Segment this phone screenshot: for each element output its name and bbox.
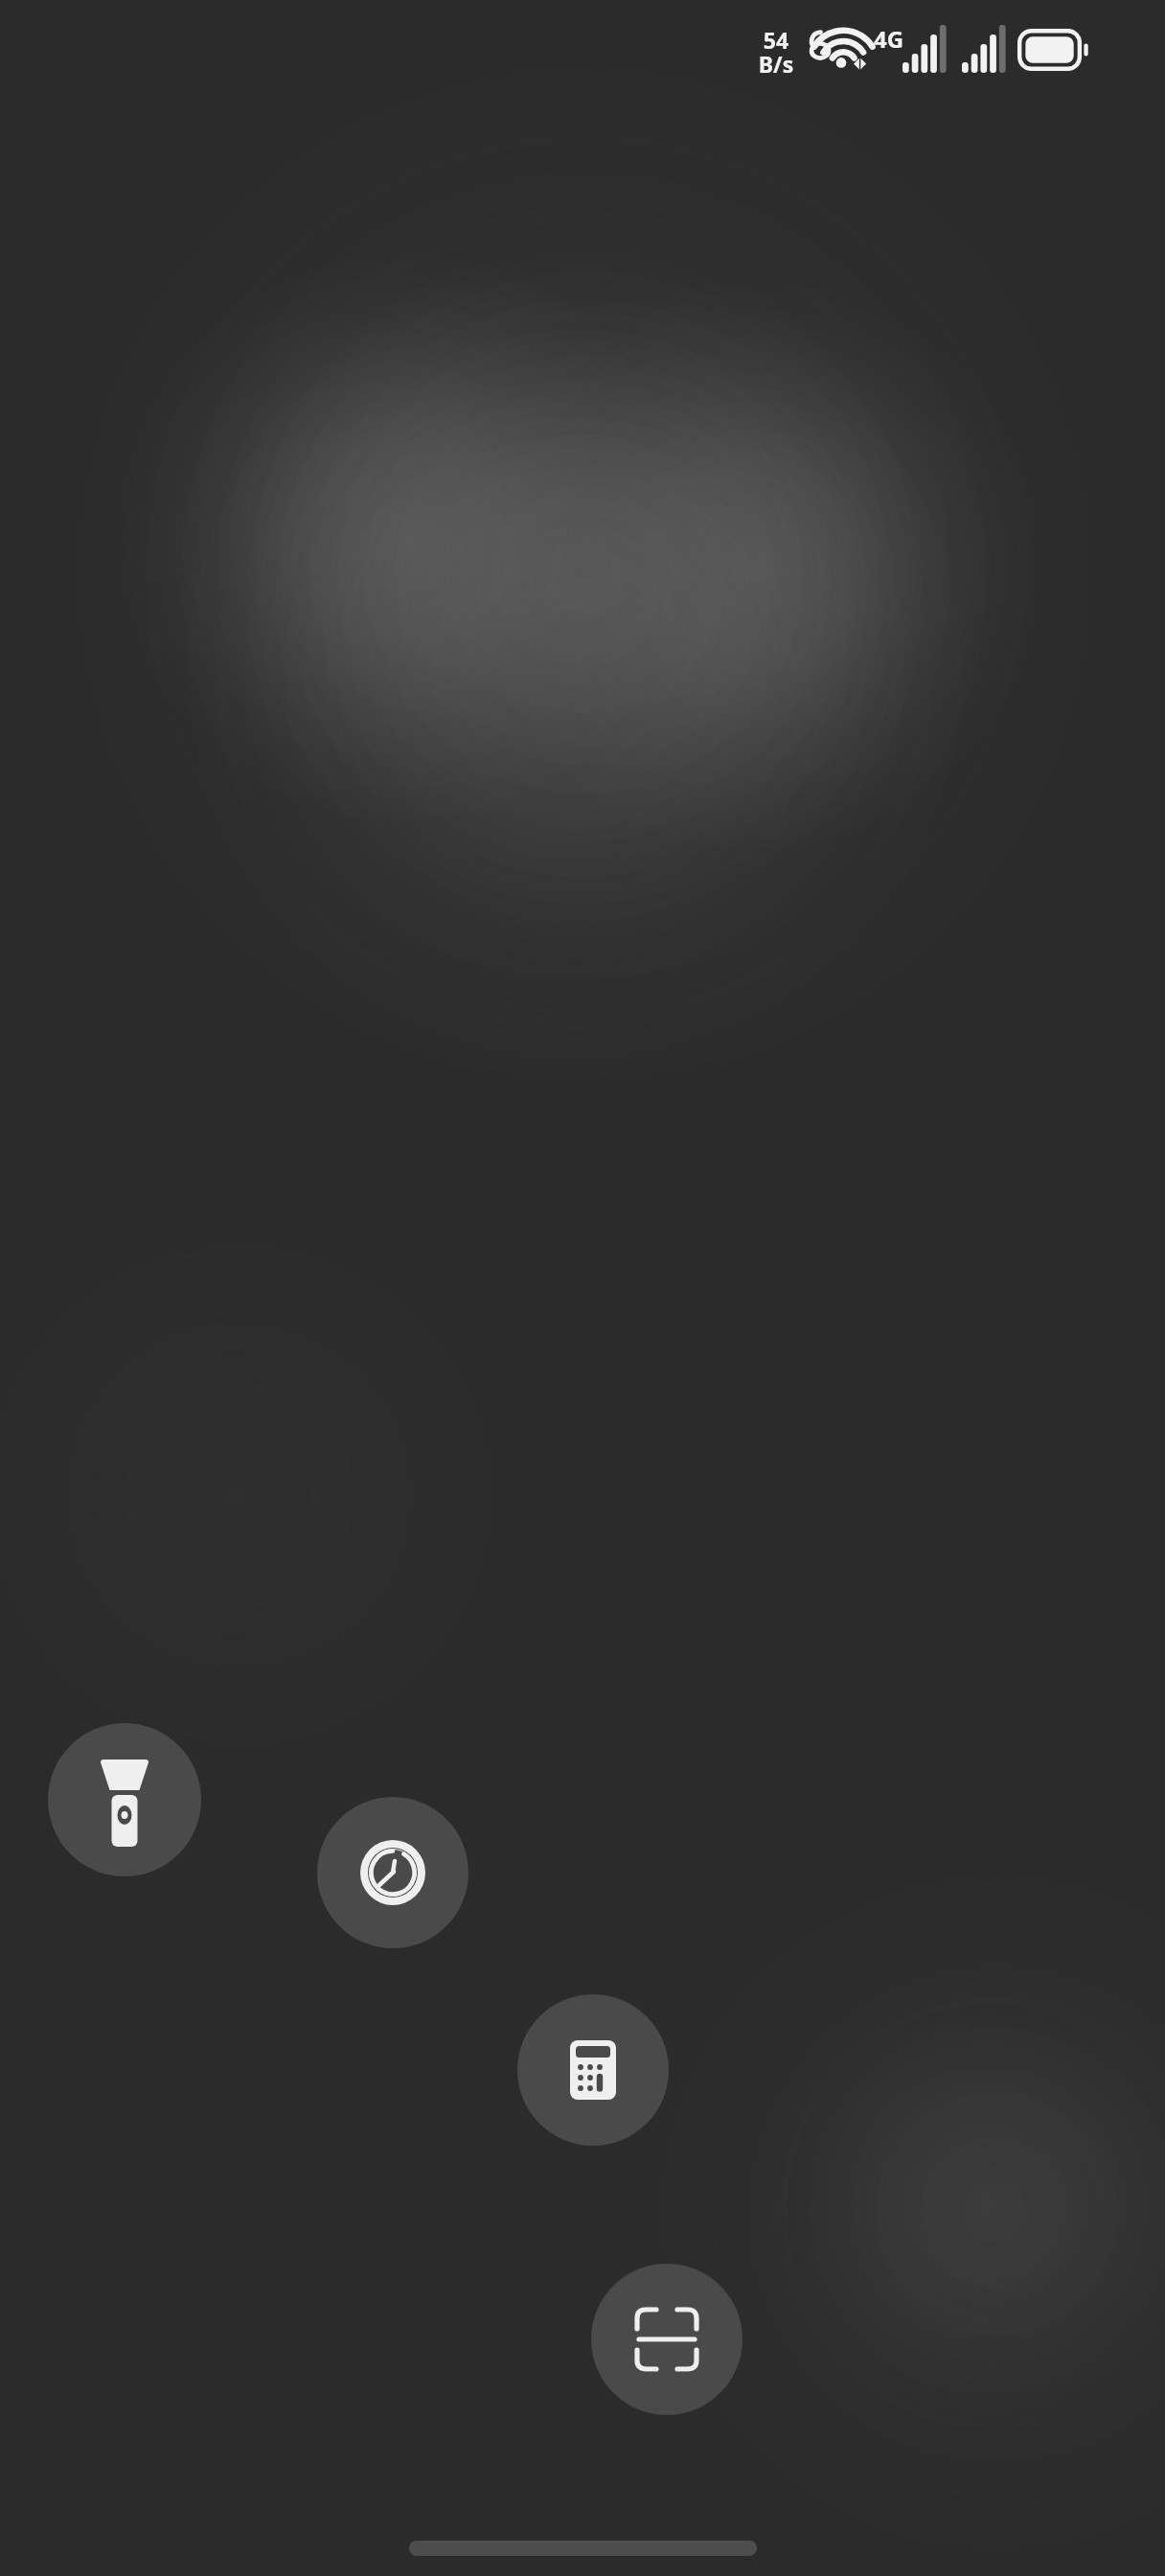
- button[interactable]: Timer: [317, 1797, 468, 1948]
- staticText: 4G: [874, 23, 904, 55]
- staticText: 54: [747, 25, 805, 52]
- button[interactable]: Calculator: [517, 1994, 669, 2146]
- button[interactable]: Flashlight: [48, 1723, 201, 1876]
- staticText: B/s: [747, 49, 805, 76]
- button[interactable]: Scan code: [591, 2264, 742, 2415]
